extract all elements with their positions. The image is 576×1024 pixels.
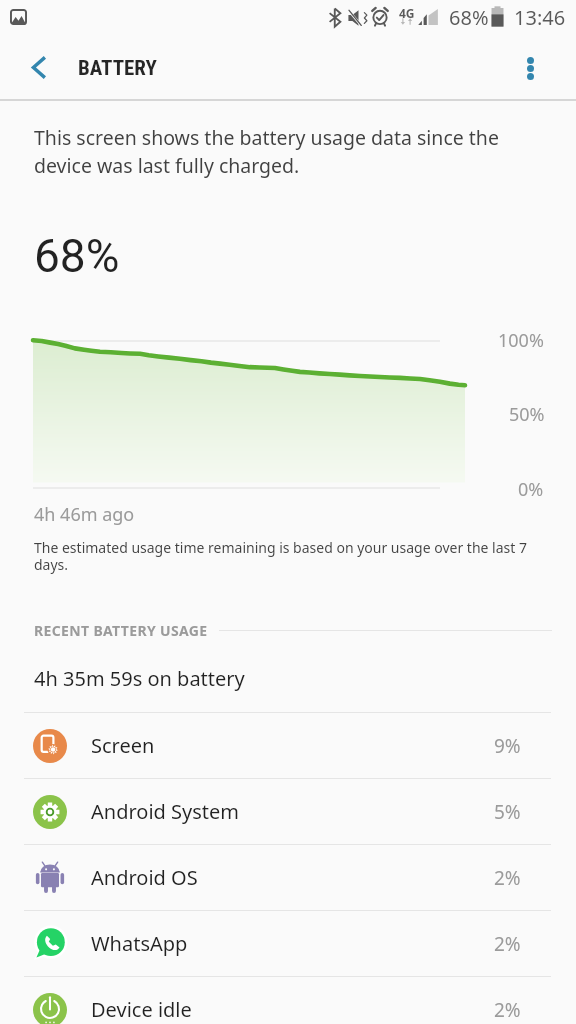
button[interactable]: Device idle [0, 977, 576, 1024]
staticText: Android System [91, 798, 240, 825]
staticText: 13:46 [514, 4, 566, 31]
button[interactable]: Android OS [0, 845, 576, 910]
button[interactable]: Screen [0, 713, 576, 778]
staticText: WhatsApp [91, 930, 188, 957]
staticText: 68% [449, 4, 489, 31]
staticText: Screen [91, 732, 155, 759]
staticText: The estimated usage time remaining is ba… [34, 538, 534, 574]
staticText: 2% [494, 997, 521, 1023]
staticText: 9% [494, 733, 521, 759]
button[interactable]: WhatsApp [0, 911, 576, 976]
button[interactable]: More options [508, 46, 552, 90]
staticText: 4h 46m ago [34, 502, 135, 527]
staticText: Device idle [91, 996, 192, 1023]
staticText: 0% [518, 477, 544, 502]
staticText: 100% [498, 328, 544, 353]
staticText: 68% [34, 229, 120, 283]
button[interactable]: Navigate up [17, 45, 61, 89]
staticText: RECENT BATTERY USAGE [34, 621, 208, 640]
staticText: 2% [494, 865, 521, 891]
staticText: BATTERY [78, 56, 157, 81]
staticText: 4G [399, 5, 415, 21]
staticText: 4h 35m 59s on battery [34, 665, 245, 692]
staticText: This screen shows the battery usage data… [34, 124, 504, 179]
staticText: 50% [509, 402, 545, 427]
staticText: 5% [494, 799, 521, 825]
staticText: Android OS [91, 864, 198, 891]
staticText: 2% [494, 931, 521, 957]
button[interactable]: Android System [0, 779, 576, 844]
